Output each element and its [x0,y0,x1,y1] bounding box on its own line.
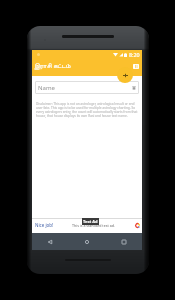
staticText: Test Ad [83,219,98,224]
button[interactable]: Home [68,233,105,250]
button[interactable]: Name [35,81,139,94]
button[interactable]: Add [117,67,133,83]
staticText: Name [38,84,55,92]
staticText: இராசி கட்டம் [34,61,71,70]
button[interactable]: Recent apps [105,233,142,250]
staticText: 8:20 [129,51,140,58]
staticText: Disclaimer: This app is not an astrologe… [36,102,138,118]
button[interactable]: Saved charts [132,62,140,70]
button[interactable]: Back [32,233,68,250]
staticText: Nice job! [35,222,54,228]
staticText: This is a standard test ad. [72,223,115,228]
button[interactable]: Nice job! [32,218,142,233]
button[interactable]: Clear [130,84,137,91]
